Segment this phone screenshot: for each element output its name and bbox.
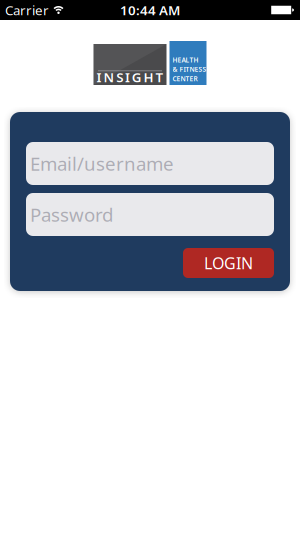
staticText: CENTER <box>172 74 197 83</box>
staticText: Carrier <box>5 1 49 19</box>
staticText: 10:44 AM <box>120 1 180 19</box>
staticText: S <box>116 68 123 86</box>
staticText: Password <box>30 202 113 227</box>
staticText: HEALTH <box>172 55 198 64</box>
staticText: I <box>97 68 102 86</box>
staticText: H <box>144 68 154 86</box>
button[interactable]: Password <box>26 193 274 236</box>
staticText: & FITNESS <box>172 65 206 74</box>
staticText: I <box>125 68 130 86</box>
staticText: Email/username <box>30 151 174 176</box>
staticText: N <box>103 68 114 86</box>
button[interactable]: LOGIN <box>183 248 274 278</box>
button[interactable]: Email/username <box>26 142 274 185</box>
staticText: T <box>155 68 163 86</box>
staticText: LOGIN <box>204 252 253 274</box>
staticText: G <box>132 68 142 86</box>
